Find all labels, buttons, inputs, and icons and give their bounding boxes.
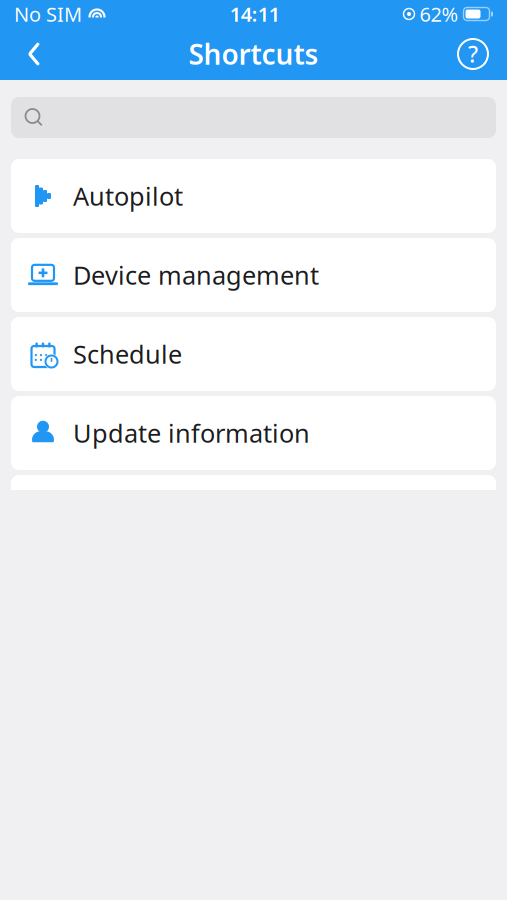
button[interactable]: Update information (11, 396, 496, 470)
button[interactable]: Set password by OTP (11, 475, 496, 549)
button[interactable]: Search (11, 97, 496, 138)
staticText: Update information (73, 416, 310, 450)
staticText: Schedule (73, 337, 182, 371)
staticText: No SIM (14, 1, 82, 27)
staticText: 14:11 (230, 1, 280, 27)
button[interactable]: Help (449, 30, 497, 78)
staticText: 62% (419, 1, 458, 27)
staticText: Shortcuts (188, 35, 318, 73)
staticText: ? (468, 39, 478, 69)
button[interactable]: Autopilot (11, 159, 496, 233)
button[interactable]: Device management (11, 238, 496, 312)
button[interactable]: Back (10, 30, 58, 78)
staticText: Autopilot (73, 179, 183, 213)
staticText: Device management (73, 258, 319, 292)
button[interactable]: Schedule (11, 317, 496, 391)
